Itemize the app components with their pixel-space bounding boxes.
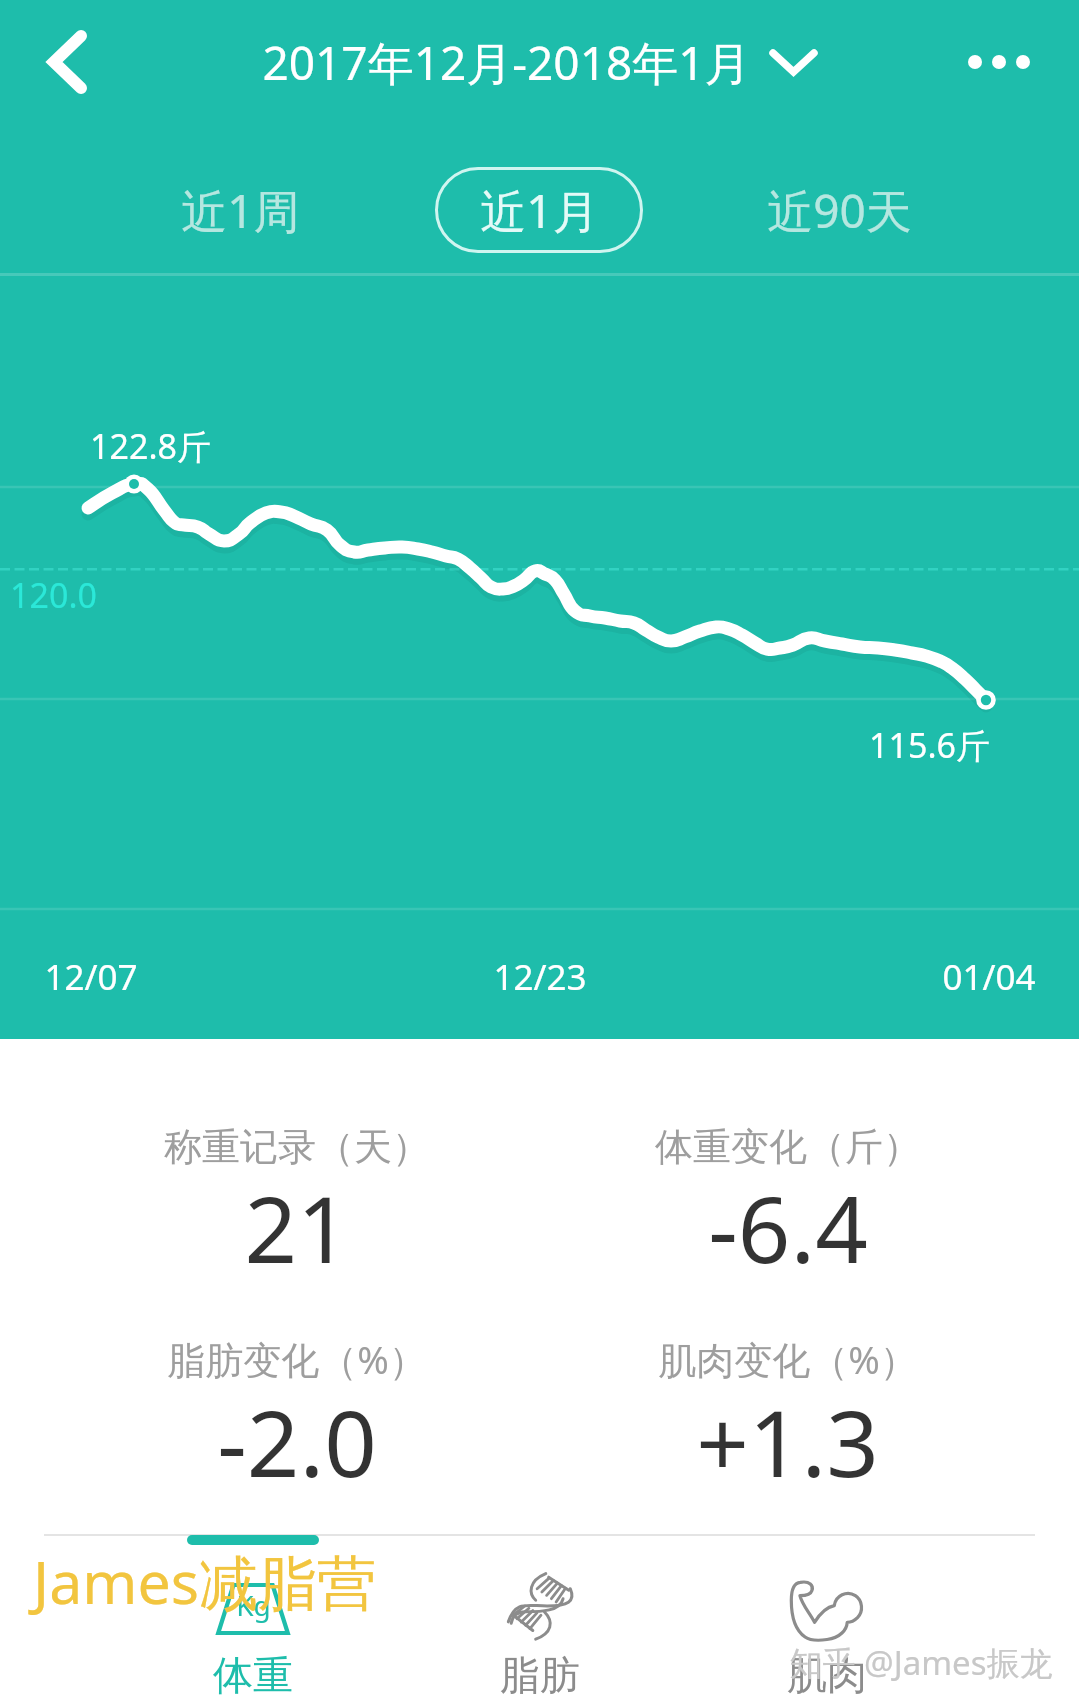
button[interactable]: 近1周 [136, 167, 344, 253]
staticText: 01/04 [942, 953, 1036, 1001]
staticText: 脂肪变化（%） [167, 1333, 427, 1385]
staticText: 肌肉 [787, 1650, 867, 1700]
staticText: 近1周 [181, 179, 300, 242]
staticText: -6.4 [708, 1165, 868, 1290]
button[interactable]: 脂肪变化（%） [51, 1333, 542, 1510]
staticText: +1.3 [696, 1379, 879, 1504]
staticText: 肌肉变化（%） [658, 1333, 918, 1385]
button[interactable]: 肌肉变化（%） [542, 1333, 1033, 1510]
staticText: 体重 [213, 1650, 293, 1700]
staticText: -2.0 [217, 1379, 377, 1504]
staticText: 12/07 [44, 953, 138, 1001]
button[interactable]: Kg [109, 1534, 396, 1708]
button[interactable]: 肌肉 [683, 1534, 970, 1708]
staticText: 知乎 @James振龙 [789, 1640, 1053, 1685]
staticText: 近1月 [480, 179, 599, 242]
button[interactable]: 脂肪 [396, 1534, 683, 1708]
staticText: James减脂营 [33, 1541, 376, 1622]
staticText: 2017年12月-2018年1月 [262, 31, 751, 94]
staticText: 122.8斤 [90, 423, 211, 469]
staticText: 脂肪 [500, 1650, 580, 1700]
button[interactable]: Back [19, 14, 115, 110]
staticText: 115.6斤 [869, 722, 990, 768]
button[interactable]: 称重记录（天） [51, 1123, 542, 1296]
staticText: 称重记录（天） [164, 1123, 430, 1171]
button[interactable]: 近1月 [435, 167, 643, 253]
staticText: 12/23 [493, 953, 587, 1001]
button[interactable]: 2017年12月-2018年1月 [262, 31, 818, 94]
staticText: 21 [244, 1165, 350, 1290]
button[interactable]: 近90天 [735, 167, 943, 253]
button[interactable]: More options [949, 12, 1049, 112]
staticText: Kg [236, 1586, 271, 1624]
button[interactable]: 体重变化（斤） [542, 1123, 1033, 1296]
staticText: 120.0 [10, 572, 97, 618]
staticText: 体重变化（斤） [655, 1123, 921, 1171]
staticText: 近90天 [767, 179, 912, 242]
